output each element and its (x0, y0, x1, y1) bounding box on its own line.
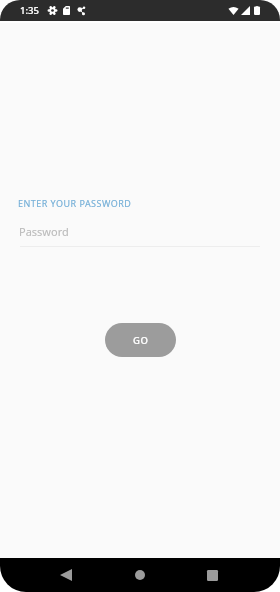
button[interactable]: Recents (198, 561, 226, 589)
staticText: 1:35 (20, 4, 40, 17)
button[interactable]: Home (126, 561, 154, 589)
staticText: ENTER YOUR PASSWORD (18, 197, 132, 209)
button[interactable]: Back (52, 561, 80, 589)
staticText: GO (133, 334, 149, 347)
button[interactable]: Password (0, 218, 280, 247)
button[interactable]: GO (105, 323, 176, 357)
staticText: Password (19, 224, 69, 239)
